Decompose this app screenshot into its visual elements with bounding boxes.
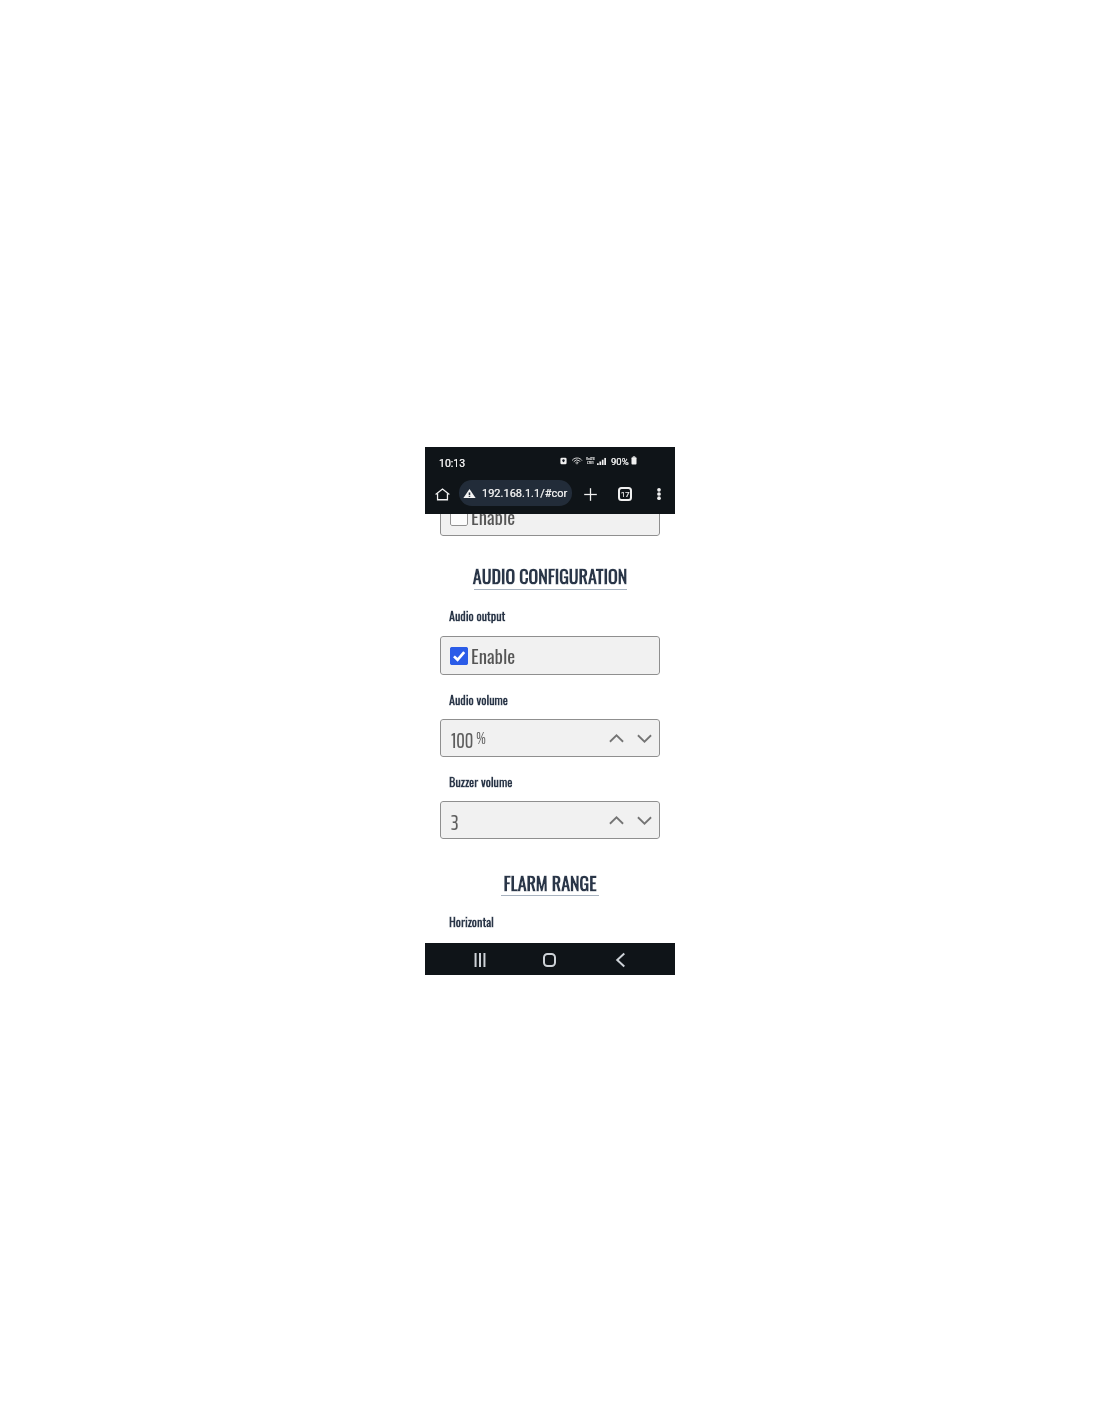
button[interactable]: 3: [440, 801, 660, 839]
button[interactable]: AUDIO CONFIGURATION: [425, 563, 675, 590]
button[interactable]: Increase: [605, 809, 627, 831]
button[interactable]: Home: [434, 486, 450, 502]
button[interactable]: Decrease: [633, 809, 655, 831]
button[interactable]: New tab: [582, 486, 598, 502]
staticText: Audio volume: [449, 690, 508, 708]
button[interactable]: Enable: [440, 514, 660, 536]
staticText: Enable: [471, 514, 516, 531]
staticText: 17: [621, 490, 630, 499]
button[interactable]: Decrease: [633, 727, 655, 749]
staticText: 192.168.1.1/#cor: [482, 487, 568, 500]
staticText: LTE1: [587, 461, 594, 465]
staticText: Enable: [471, 642, 516, 670]
staticText: 100: [451, 724, 474, 757]
staticText: %: [476, 725, 487, 752]
staticText: Horizontal: [449, 912, 494, 930]
staticText: 90%: [611, 456, 629, 467]
button[interactable]: Home: [535, 946, 563, 974]
button[interactable]: 100: [440, 719, 660, 757]
button[interactable]: Back: [606, 946, 634, 974]
staticText: VoLTE: [586, 457, 595, 461]
button[interactable]: More options: [653, 487, 665, 501]
button[interactable]: Increase: [605, 727, 627, 749]
staticText: Audio output: [449, 606, 506, 624]
staticText: 10:13: [439, 457, 466, 469]
button[interactable]: Tabs: [617, 486, 633, 502]
button[interactable]: Enable: [440, 636, 660, 675]
button[interactable]: 192.168.1.1/#cor: [459, 480, 572, 506]
staticText: Buzzer volume: [449, 772, 513, 790]
button[interactable]: Recents: [466, 946, 494, 974]
button[interactable]: FLARM RANGE: [425, 870, 675, 897]
staticText: 3: [451, 806, 459, 839]
